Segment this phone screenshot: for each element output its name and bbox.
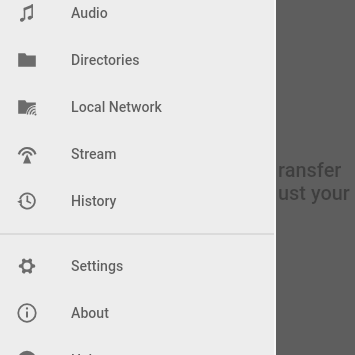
staticText: Help bbox=[71, 352, 101, 355]
staticText: Local Network bbox=[71, 99, 162, 116]
staticText: Settings bbox=[71, 258, 124, 275]
staticText: About bbox=[71, 305, 109, 322]
staticText: Stream bbox=[71, 146, 117, 163]
button[interactable]: Stream bbox=[0, 130, 276, 177]
staticText: Audio bbox=[71, 5, 108, 22]
button[interactable]: Local Network bbox=[0, 83, 276, 130]
button[interactable]: About bbox=[0, 289, 276, 336]
button[interactable]: History bbox=[0, 177, 276, 224]
button[interactable]: Directories bbox=[0, 36, 276, 83]
staticText: ransfer bbox=[278, 159, 342, 182]
button[interactable]: Audio bbox=[0, 0, 276, 36]
staticText: History bbox=[71, 193, 117, 210]
button[interactable]: Help bbox=[0, 336, 276, 355]
staticText: ust your bbox=[278, 182, 350, 205]
button[interactable]: Settings bbox=[0, 242, 276, 289]
staticText: Directories bbox=[71, 52, 140, 69]
